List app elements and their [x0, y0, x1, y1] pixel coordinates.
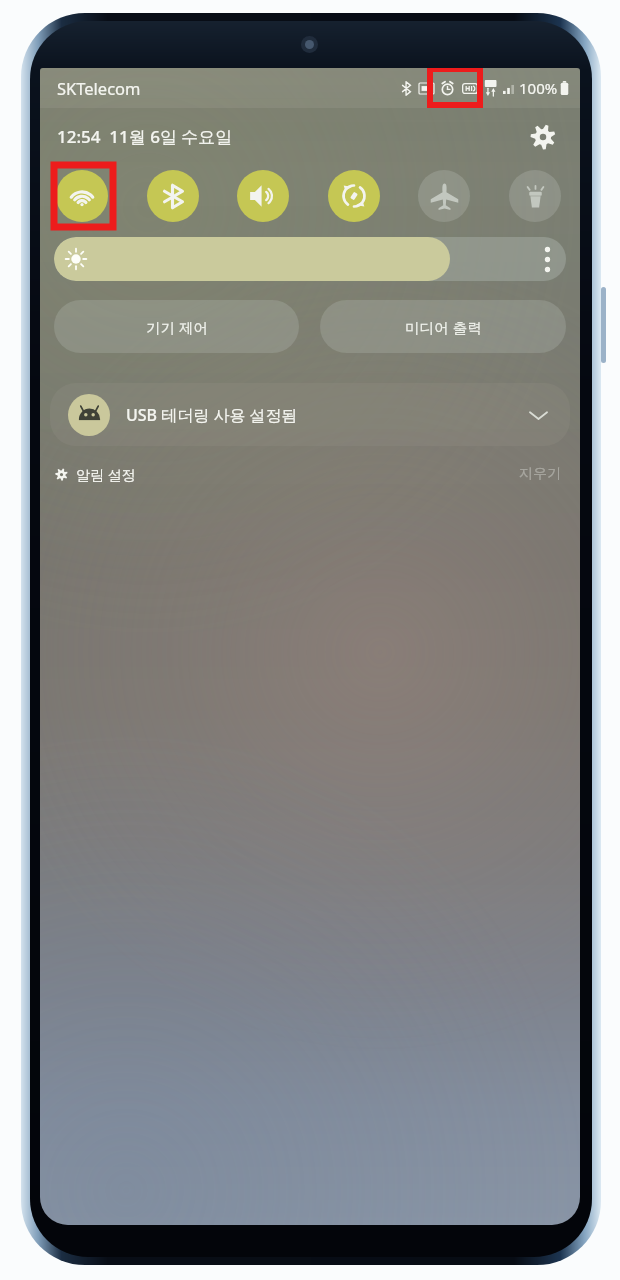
staticText: 알림 설정 — [76, 465, 136, 484]
button[interactable]: 지우기 — [513, 461, 567, 487]
button[interactable]: 기기 제어 — [54, 300, 299, 353]
button[interactable]: Auto rotate — [328, 170, 380, 222]
staticText: 100% — [519, 78, 558, 98]
button[interactable]: Wi-Fi — [56, 170, 108, 222]
staticText: 미디어 출력 — [405, 317, 482, 337]
button[interactable]: Expand notification — [522, 399, 554, 431]
button[interactable]: Settings — [525, 119, 561, 155]
button[interactable]: USB 테더링 사용 설정됨 — [50, 383, 570, 446]
staticText: 기기 제어 — [146, 317, 208, 337]
staticText: 12:54 11월 6일 수요일 — [57, 125, 233, 148]
button[interactable]: Airplane mode — [418, 170, 470, 222]
button[interactable]: Brightness — [54, 237, 566, 281]
button[interactable]: 미디어 출력 — [320, 300, 566, 353]
staticText: SKTelecom — [57, 77, 141, 99]
staticText: 지우기 — [519, 465, 561, 483]
button[interactable]: 알림 설정 — [50, 461, 141, 488]
staticText: USB 테더링 사용 설정됨 — [126, 404, 298, 426]
button[interactable]: Flashlight — [509, 170, 561, 222]
button[interactable]: Bluetooth — [147, 170, 199, 222]
button[interactable]: Sound — [237, 170, 289, 222]
